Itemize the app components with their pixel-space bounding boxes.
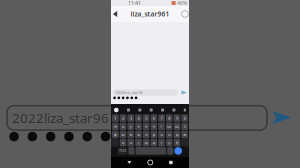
button[interactable]: Settings [177, 6, 192, 22]
staticText: у [130, 124, 132, 129]
staticText: ь [168, 140, 170, 145]
staticText: д [176, 132, 178, 137]
staticText: р [153, 132, 155, 137]
staticText: 9 [176, 115, 178, 121]
staticText: п [145, 132, 147, 137]
staticText: л [168, 132, 170, 137]
staticText: т [160, 140, 162, 145]
staticText: 3 [130, 115, 132, 121]
staticText: з [184, 124, 186, 129]
staticText: и [153, 140, 155, 145]
staticText: 4 [137, 115, 139, 121]
staticText: м [145, 140, 148, 145]
staticText: н [153, 124, 155, 129]
staticText: г [160, 124, 162, 129]
button[interactable]: Back [107, 6, 122, 22]
staticText: ?123 [119, 149, 126, 153]
staticText: б [176, 140, 178, 145]
staticText: ф [114, 132, 117, 137]
staticText: 46% [177, 0, 187, 7]
staticText: е [145, 124, 147, 129]
staticText: а [137, 132, 139, 137]
staticText: ж [183, 132, 186, 137]
staticText: я [122, 140, 124, 145]
staticText: 11:41 [128, 0, 141, 7]
staticText: в [130, 132, 132, 137]
staticText: ы [121, 132, 124, 137]
staticText: 7 [160, 115, 162, 121]
staticText: й [114, 124, 116, 129]
staticText: ш [167, 124, 171, 129]
staticText: 2022liza_star96 [115, 90, 142, 95]
staticText: ч [130, 140, 132, 145]
staticText: 5 [145, 115, 147, 121]
staticText: 2022liza_star96 [12, 109, 109, 127]
staticText: ц [122, 124, 124, 129]
staticText: liza_star961 [130, 10, 169, 18]
staticText: 2 [122, 115, 124, 121]
staticText: 1 [114, 115, 116, 121]
staticText: о [160, 132, 162, 137]
staticText: 6 [153, 115, 155, 121]
staticText: 0 [184, 115, 186, 121]
staticText: к [137, 124, 139, 129]
staticText: 8 [168, 115, 170, 121]
staticText: щ [175, 124, 179, 129]
staticText: с [137, 140, 139, 145]
